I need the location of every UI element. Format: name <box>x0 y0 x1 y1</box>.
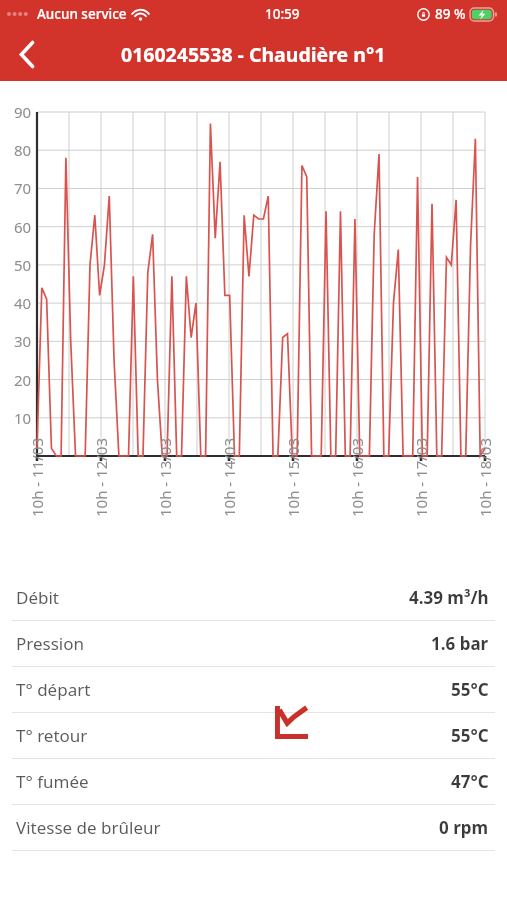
staticText: Débit <box>16 586 59 609</box>
staticText: 10:59 <box>265 5 300 23</box>
staticText: 10h - 16/03 <box>347 438 367 517</box>
staticText: 70 <box>14 178 32 198</box>
button[interactable]: Débit <box>0 575 507 621</box>
staticText: 0160245538 - Chaudière n°1 <box>121 41 386 68</box>
staticText: Aucun service <box>37 5 127 23</box>
staticText: 89 % <box>435 5 466 23</box>
button[interactable]: Show chart <box>272 703 310 741</box>
staticText: 20 <box>14 370 32 390</box>
button[interactable]: T° retour <box>0 713 507 759</box>
staticText: 10h - 17/03 <box>411 438 431 517</box>
staticText: T° départ <box>16 678 91 701</box>
staticText: 80 <box>14 140 32 160</box>
staticText: 1.6 bar <box>431 632 489 655</box>
button[interactable]: Back <box>0 28 54 81</box>
staticText: 10h - 14/03 <box>219 438 239 517</box>
staticText: 0 rpm <box>439 816 489 839</box>
staticText: 47°C <box>451 770 489 793</box>
button[interactable]: T° fumée <box>0 759 507 805</box>
staticText: 55°C <box>451 678 489 701</box>
staticText: T° fumée <box>16 770 89 793</box>
button[interactable]: T° départ <box>0 667 507 713</box>
staticText: 10h - 18/03 <box>475 438 495 517</box>
staticText: 10h - 15/03 <box>283 438 303 517</box>
staticText: 4.39 m³/h <box>409 586 489 609</box>
staticText: 50 <box>14 255 32 275</box>
staticText: 90 <box>14 102 32 122</box>
staticText: 55°C <box>451 724 489 747</box>
staticText: 40 <box>14 293 32 313</box>
staticText: 10h - 12/03 <box>91 438 111 517</box>
staticText: 10 <box>14 408 32 428</box>
staticText: 10h - 13/03 <box>155 438 175 517</box>
staticText: Pression <box>16 632 85 655</box>
staticText: Vitesse de brûleur <box>16 816 161 839</box>
staticText: 60 <box>14 217 32 237</box>
button[interactable]: Pression <box>0 621 507 667</box>
button[interactable]: Vitesse de brûleur <box>0 805 507 851</box>
staticText: 30 <box>14 331 32 351</box>
staticText: 10h - 11/03 <box>27 438 47 517</box>
staticText: T° retour <box>16 724 88 747</box>
